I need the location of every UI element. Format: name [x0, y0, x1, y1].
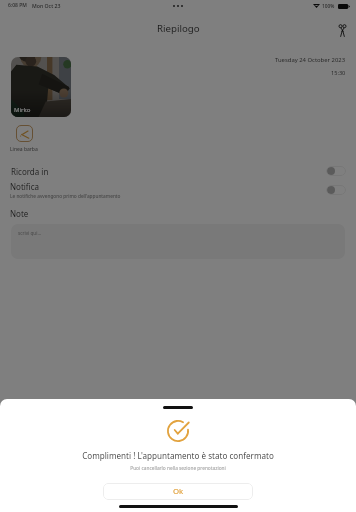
button[interactable]: Ok — [103, 483, 253, 500]
staticText: Notifica — [10, 181, 40, 192]
staticText: scrivi qui... — [18, 230, 42, 236]
button[interactable]: Scissors — [334, 22, 351, 39]
button[interactable]: Linea barba — [16, 125, 33, 142]
staticText: 6:08 PM — [8, 2, 27, 9]
staticText: Tuesday 24 October 2023 — [275, 56, 346, 64]
staticText: Riepilogo — [157, 22, 200, 35]
staticText: Le notifiche avvengono primo dell'appunt… — [10, 193, 121, 199]
staticText: Note — [10, 208, 29, 219]
button[interactable]: Toggle — [326, 166, 346, 176]
staticText: 100% — [322, 3, 335, 10]
staticText: Mon Oct 23 — [32, 2, 61, 9]
staticText: Ok — [173, 486, 184, 497]
button[interactable]: Mirko — [11, 57, 71, 117]
button[interactable]: Toggle — [326, 185, 346, 195]
staticText: Linea barba — [10, 146, 38, 153]
staticText: 15:30 — [331, 69, 346, 77]
staticText: Complimenti ! L'appuntamento è stato con… — [0, 450, 356, 461]
staticText: Puoi cancellarlo nella sezione prenotazi… — [0, 465, 356, 472]
staticText: Mirko — [14, 105, 31, 113]
staticText: Ricorda in — [11, 166, 49, 177]
